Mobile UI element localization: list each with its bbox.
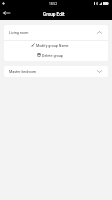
button[interactable]: Modify group Name xyxy=(4,41,108,51)
button[interactable]: Delete group xyxy=(4,51,108,61)
staticText: Master bedroom xyxy=(9,69,37,74)
button[interactable]: Living room xyxy=(4,25,108,40)
staticText: Modify group Name xyxy=(36,43,69,48)
staticText: 18:52 xyxy=(49,2,57,6)
button[interactable]: Master bedroom xyxy=(4,66,108,77)
button[interactable]: Back xyxy=(0,7,12,19)
staticText: Delete group xyxy=(42,53,63,58)
staticText: Living room xyxy=(9,30,29,35)
staticText: Group Edit xyxy=(43,12,65,17)
